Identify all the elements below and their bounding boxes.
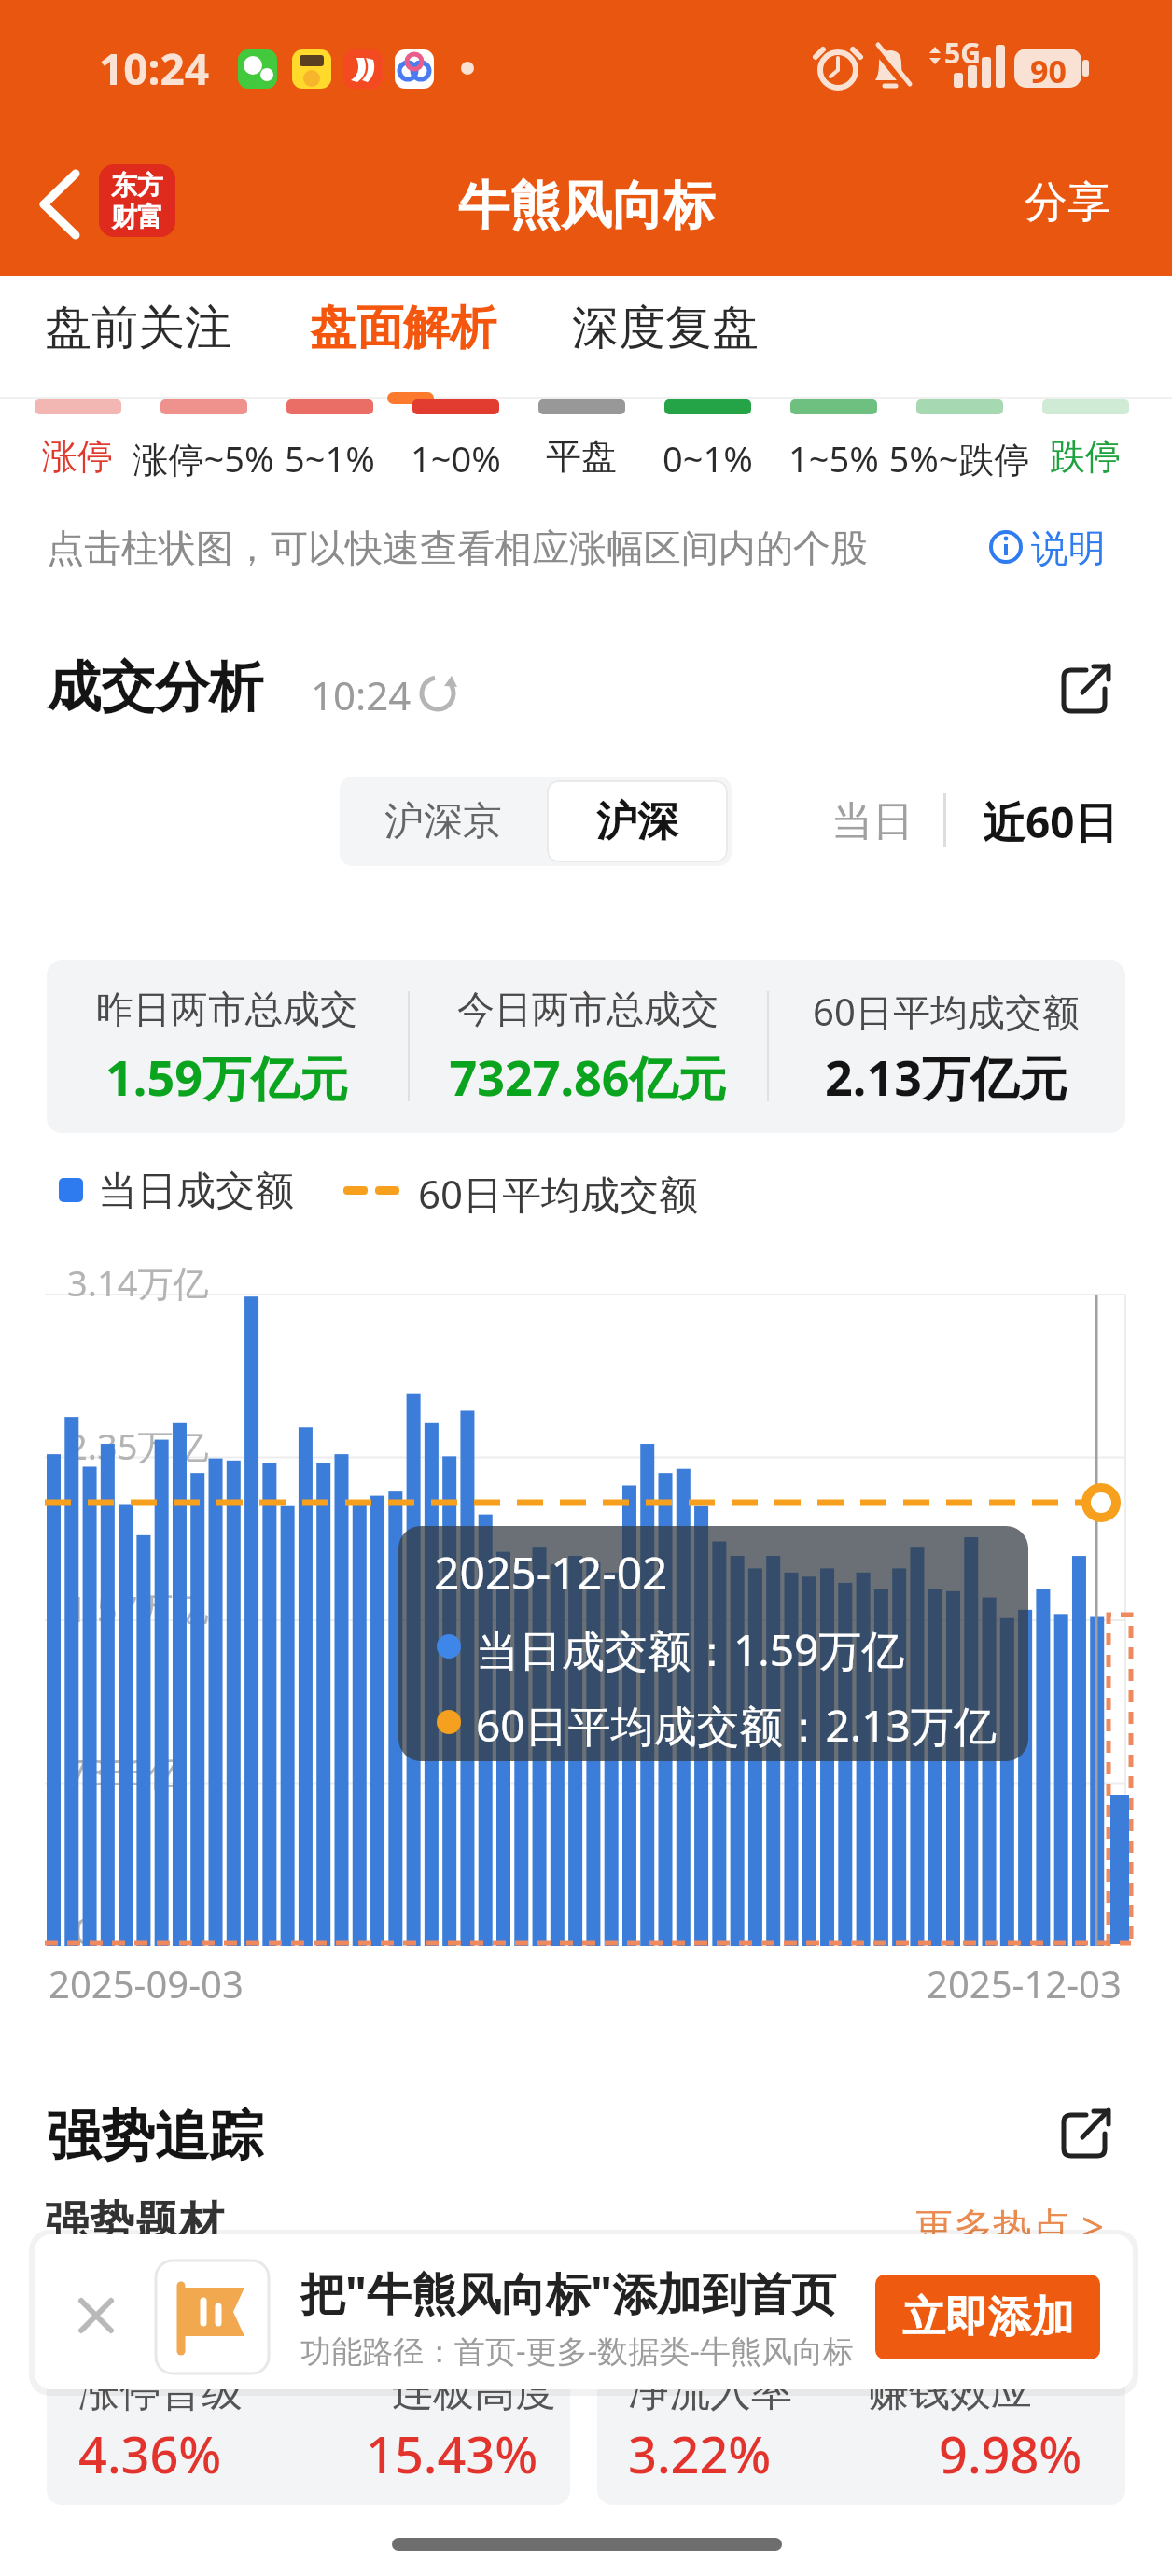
button[interactable] bbox=[790, 399, 877, 414]
staticText: 盘前关注 bbox=[45, 299, 231, 357]
staticText: 4.36% bbox=[78, 2419, 222, 2488]
staticText: 说明 bbox=[1031, 525, 1106, 571]
staticText: 10:24 bbox=[99, 39, 210, 98]
button[interactable] bbox=[1042, 399, 1129, 414]
staticText: 平盘 bbox=[546, 434, 617, 479]
staticText: 15.43% bbox=[366, 2419, 538, 2488]
button[interactable] bbox=[412, 399, 499, 414]
staticText: 更多热点 > bbox=[914, 2199, 1104, 2252]
staticText: 3.22% bbox=[628, 2419, 772, 2488]
staticText: 1.57万亿 bbox=[67, 1584, 209, 1632]
staticText: 2025-09-03 bbox=[49, 1958, 244, 2009]
staticText: 2025-12-02 bbox=[434, 1542, 668, 1603]
staticText: 分享 bbox=[1025, 175, 1110, 230]
button[interactable] bbox=[160, 399, 247, 414]
staticText: 强势追踪 bbox=[47, 2102, 263, 2170]
staticText: 5~1% bbox=[285, 434, 375, 483]
staticText: 涨停~5% bbox=[133, 434, 274, 483]
button[interactable] bbox=[1058, 2107, 1114, 2163]
staticText: 当日 bbox=[831, 796, 914, 847]
button[interactable] bbox=[28, 163, 93, 238]
staticText: 牛熊风向标 bbox=[458, 174, 715, 238]
staticText: 功能路径：首页-更多-数据类-牛熊风向标 bbox=[300, 2330, 854, 2372]
button[interactable] bbox=[597, 2251, 1125, 2505]
staticText: 当日成交额：1.59万亿 bbox=[476, 1620, 905, 1679]
button[interactable]: 盘面解析 bbox=[310, 299, 513, 373]
staticText: 沪深 bbox=[596, 796, 678, 847]
staticText: 连板高度 bbox=[392, 2366, 556, 2417]
staticText: 当日成交额 bbox=[98, 1167, 294, 1216]
staticText: 沪深京 bbox=[384, 797, 502, 847]
button[interactable] bbox=[35, 2234, 1133, 2389]
button[interactable] bbox=[286, 399, 373, 414]
button[interactable]: 当日 bbox=[821, 791, 924, 851]
staticText: 7833亿 bbox=[67, 1747, 184, 1796]
staticText: 赚钱效应 bbox=[868, 2366, 1032, 2417]
staticText: 1.59万亿元 bbox=[105, 1043, 348, 1110]
staticText: 2.35万亿 bbox=[67, 1421, 209, 1470]
staticText: 7327.86亿元 bbox=[449, 1043, 727, 1110]
button[interactable]: 分享 bbox=[1025, 175, 1133, 231]
button[interactable]: 沪深京 bbox=[340, 777, 547, 866]
staticText: 0 bbox=[75, 1906, 95, 1954]
button[interactable] bbox=[35, 399, 121, 414]
staticText: 9.98% bbox=[939, 2419, 1082, 2488]
button[interactable] bbox=[47, 2251, 570, 2505]
staticText: 东方 bbox=[111, 169, 163, 202]
button[interactable]: 近60日 bbox=[970, 791, 1129, 851]
staticText: 60日平均成交额：2.13万亿 bbox=[476, 1696, 997, 1755]
button[interactable] bbox=[916, 399, 1003, 414]
staticText: 3.14万亿 bbox=[67, 1258, 209, 1307]
staticText: 5%~跌停 bbox=[888, 434, 1030, 483]
staticText: 今日两市总成交 bbox=[457, 986, 719, 1032]
staticText: 1~0% bbox=[411, 434, 501, 483]
staticText: 涨停晋级 bbox=[78, 2366, 243, 2417]
staticText: 昨日两市总成交 bbox=[96, 986, 357, 1032]
staticText: 2.13万亿元 bbox=[825, 1043, 1067, 1110]
staticText: 跌停 bbox=[1050, 434, 1121, 479]
button[interactable]: 说明 bbox=[984, 521, 1134, 569]
button[interactable]: 深度复盘 bbox=[572, 299, 783, 373]
staticText: 60日平均成交额 bbox=[813, 986, 1080, 1037]
staticText: 0~1% bbox=[663, 434, 753, 483]
button[interactable] bbox=[1058, 663, 1114, 719]
staticText: 点击柱状图，可以快速查看相应涨幅区间内的个股 bbox=[47, 525, 868, 571]
staticText: 强势题材 bbox=[45, 2195, 224, 2251]
button[interactable]: 盘前关注 bbox=[45, 299, 256, 373]
staticText: 净流入率 bbox=[628, 2366, 792, 2417]
staticText: 1~5% bbox=[788, 434, 879, 483]
staticText: 近60日 bbox=[983, 792, 1118, 851]
button[interactable] bbox=[538, 399, 625, 414]
staticText: 立即添加 bbox=[902, 2290, 1074, 2345]
staticText: 10:24 bbox=[311, 668, 412, 721]
button[interactable] bbox=[67, 2287, 125, 2345]
staticText: 60日平均成交额 bbox=[418, 1167, 699, 1220]
staticText: 成交分析 bbox=[47, 653, 263, 721]
button[interactable]: 立即添加 bbox=[875, 2275, 1100, 2359]
staticText: 90 bbox=[1030, 49, 1067, 92]
staticText: 涨停 bbox=[42, 434, 113, 479]
staticText: 深度复盘 bbox=[572, 299, 759, 357]
button[interactable]: 东方 bbox=[99, 164, 175, 237]
button[interactable] bbox=[664, 399, 751, 414]
staticText: 5G bbox=[944, 34, 981, 72]
button[interactable]: 沪深 bbox=[547, 780, 728, 862]
staticText: 2025-12-03 bbox=[927, 1958, 1122, 2009]
staticText: 盘面解析 bbox=[310, 299, 496, 357]
staticText: 财富 bbox=[111, 201, 163, 233]
staticText: 把"牛熊风向标"添加到首页 bbox=[300, 2262, 836, 2324]
